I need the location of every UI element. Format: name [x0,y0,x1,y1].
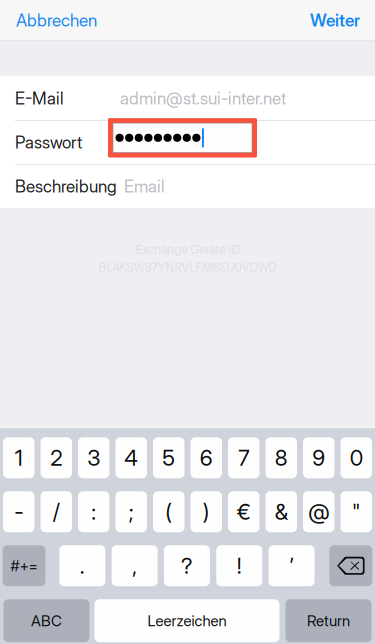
staticText: Abbrechen [16,10,97,31]
button[interactable]: / [40,491,72,532]
button[interactable]: ’ [269,545,315,586]
button[interactable]: Beschreibung [0,164,375,208]
button[interactable]: E-Mail [0,76,375,120]
staticText: , [132,552,137,579]
staticText: 3 [87,444,100,471]
button[interactable] [108,118,257,157]
button[interactable]: 8 [265,437,297,478]
staticText: Exchange Geräte ID [135,242,239,257]
button[interactable]: 1 [3,437,34,478]
button[interactable]: Löschen [329,545,372,586]
button[interactable]: € [228,491,259,532]
button[interactable]: ) [190,491,222,532]
button[interactable]: 5 [153,437,184,478]
button[interactable]: 6 [190,437,222,478]
button[interactable]: ; [115,491,147,532]
button[interactable]: @ [303,491,334,532]
button[interactable]: 3 [78,437,109,478]
button[interactable]: . [59,545,105,586]
staticText: ! [237,552,242,579]
staticText: ABC [31,612,62,630]
staticText: ( [165,498,172,525]
staticText: Weiter [310,10,360,31]
button[interactable]: , [112,545,158,586]
staticText: Return [307,612,350,630]
staticText: #+= [11,557,38,575]
button[interactable]: ! [216,545,262,586]
button[interactable]: - [3,491,34,532]
button[interactable]: Return [285,599,371,642]
staticText: 7 [238,444,249,471]
button[interactable]: 9 [303,437,334,478]
staticText: ’ [290,552,294,579]
button[interactable]: 4 [115,437,147,478]
button[interactable]: ? [164,545,210,586]
button[interactable]: ( [153,491,184,532]
button[interactable]: Leerzeichen [94,599,279,642]
staticText: - [14,498,23,525]
staticText: Leerzeichen [147,612,226,630]
staticText: & [275,498,288,525]
staticText: ; [129,498,134,525]
button[interactable]: 7 [228,437,259,478]
button[interactable]: Weiter [298,0,375,41]
staticText: / [53,498,60,525]
staticText: " [352,498,361,525]
button[interactable]: 0 [340,437,372,478]
staticText: 9 [312,444,325,471]
staticText: Passwort [15,132,82,153]
button[interactable]: #+= [3,545,45,586]
staticText: BL4KSW37YNRVLFM8EU0VDWD [98,260,276,274]
button[interactable]: " [340,491,372,532]
staticText: Email [124,176,165,197]
staticText: E-Mail [15,88,64,109]
button[interactable]: & [265,491,297,532]
staticText: @ [308,498,329,525]
button[interactable]: 2 [40,437,72,478]
staticText: admin@st.sui-inter.net [120,88,286,109]
staticText: 1 [15,444,23,471]
staticText: ) [203,498,210,525]
staticText: 5 [162,444,175,471]
staticText: 2 [50,444,62,471]
staticText: Beschreibung [15,176,117,197]
staticText: . [80,552,85,579]
staticText: : [91,498,96,525]
staticText: ? [181,552,193,579]
staticText: 0 [350,444,363,471]
button[interactable]: Abbrechen [0,0,109,41]
staticText: 6 [200,444,213,471]
staticText: 4 [124,444,138,471]
staticText: € [237,498,251,525]
button[interactable]: : [78,491,109,532]
button[interactable]: ABC [3,599,89,642]
staticText: 8 [275,444,288,471]
